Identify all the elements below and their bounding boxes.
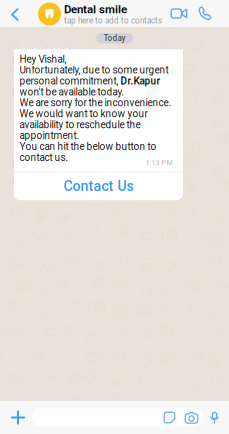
button[interactable]: Record voice message: [203, 401, 226, 434]
staticText: Today: [103, 33, 125, 43]
button[interactable]: Sticker: [159, 408, 180, 426]
button[interactable]: Back: [4, 1, 26, 28]
staticText: Contact Us: [63, 178, 133, 194]
button[interactable]: Attach: [4, 401, 32, 434]
staticText: tap here to add to contacts: [64, 16, 162, 25]
button[interactable]: Contact Us: [14, 172, 183, 200]
button[interactable]: Voice call: [193, 0, 215, 27]
staticText: Hey Vishal, Unfortunately, due to some u…: [19, 53, 171, 163]
button[interactable]: Dental smile: [38, 0, 168, 27]
staticText: Dental smile: [64, 2, 127, 16]
staticText: 1:13 PM: [145, 158, 172, 167]
button[interactable]: Video call: [167, 0, 191, 27]
button[interactable]: Camera: [180, 408, 203, 426]
